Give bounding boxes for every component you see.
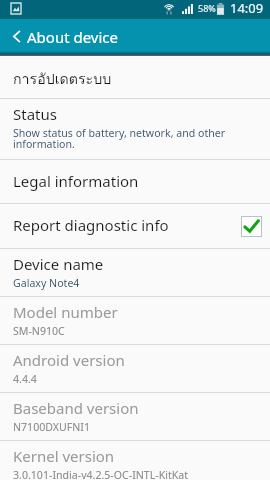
staticText: การอัปเดตระบบ [13,68,112,91]
staticText: Device name [13,254,104,274]
staticText: Model number [13,302,118,322]
staticText: SM-N910C [13,324,65,338]
staticText: 4.4.4 [13,372,37,386]
button[interactable]: Legal information [0,160,270,203]
staticText: information. [13,137,75,151]
button[interactable]: Device name [0,249,270,296]
staticText: Baseband version [13,398,139,418]
staticText: N7100DXUFNI1 [13,420,90,434]
staticText: Android version [13,350,125,370]
button[interactable]: Kernel version [0,441,270,480]
button[interactable]: Navigate up [0,19,270,54]
button[interactable]: Model number [0,297,270,344]
button[interactable]: การอัปเดตระบบ [0,57,270,98]
staticText: Show status of battery, network, and oth… [13,126,226,140]
staticText: Status [13,104,57,124]
button[interactable]: Report diagnostic info [0,204,270,248]
button[interactable]: Status [0,99,270,159]
button[interactable]: Baseband version [0,393,270,440]
staticText: 3.0.101-India-v4.2.5-OC-INTL-KitKat [13,468,189,480]
staticText: Galaxy Note4 [13,276,80,290]
staticText: 58% [198,2,216,14]
staticText: Kernel version [13,446,115,466]
staticText: 14:09 [230,0,264,17]
staticText: Report diagnostic info [13,215,169,235]
button[interactable]: Android version [0,345,270,392]
staticText: About device [27,27,119,47]
staticText: Legal information [13,171,139,191]
